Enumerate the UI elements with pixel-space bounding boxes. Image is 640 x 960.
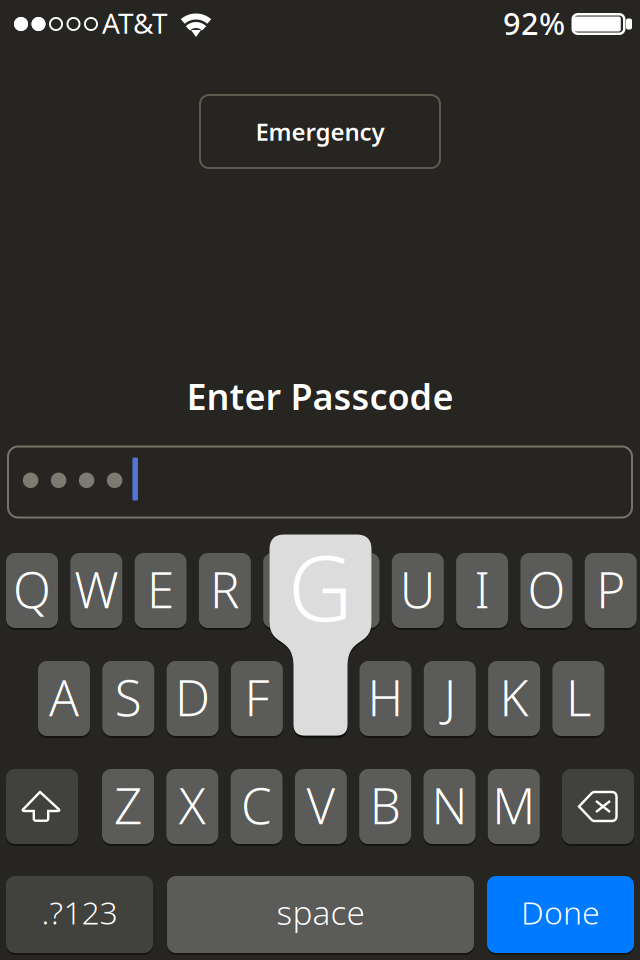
button[interactable]: .?123 <box>6 876 153 953</box>
staticText: space <box>276 890 364 934</box>
button[interactable]: V <box>295 769 347 844</box>
button[interactable]: Delete <box>562 769 634 844</box>
button[interactable]: I <box>456 553 508 628</box>
button[interactable]: M <box>488 769 540 844</box>
staticText: N <box>431 772 467 838</box>
staticText: I <box>475 556 490 622</box>
button[interactable]: S <box>102 661 154 736</box>
staticText: Enter Passcode <box>186 372 453 420</box>
staticText: B <box>370 772 401 838</box>
staticText: J <box>444 664 456 730</box>
button[interactable]: R <box>199 553 251 628</box>
button[interactable]: H <box>359 661 411 736</box>
staticText: A <box>49 664 79 730</box>
button[interactable]: N <box>423 769 475 844</box>
staticText: D <box>175 664 210 730</box>
button[interactable]: Q <box>6 553 58 628</box>
button[interactable]: C <box>231 769 283 844</box>
button[interactable]: K <box>488 661 540 736</box>
staticText: R <box>210 556 240 622</box>
button[interactable]: A <box>38 661 90 736</box>
staticText: O <box>527 556 565 622</box>
staticText: .?123 <box>41 891 117 933</box>
staticText: L <box>566 664 591 730</box>
button[interactable]: Emergency <box>199 94 441 169</box>
staticText: P <box>596 556 625 622</box>
staticText: Q <box>13 556 51 622</box>
button[interactable]: Z <box>102 769 154 844</box>
button[interactable]: T <box>263 553 315 628</box>
button[interactable]: F <box>231 661 283 736</box>
staticText: C <box>241 772 272 838</box>
staticText: V <box>306 772 335 838</box>
button[interactable]: Y <box>327 553 379 628</box>
staticText: M <box>492 772 535 838</box>
button[interactable]: space <box>167 876 474 953</box>
staticText: G <box>288 527 353 646</box>
button[interactable]: X <box>166 769 218 844</box>
staticText: AT&T <box>102 4 168 42</box>
staticText: K <box>500 664 529 730</box>
button[interactable]: U <box>392 553 444 628</box>
button[interactable]: Done <box>487 876 634 953</box>
button[interactable]: G <box>295 661 347 736</box>
staticText: F <box>244 664 269 730</box>
staticText: T <box>276 556 302 622</box>
staticText: 92% <box>503 3 565 43</box>
staticText: X <box>179 772 206 838</box>
staticText: Done <box>521 891 600 933</box>
staticText: U <box>400 556 436 622</box>
button[interactable]: B <box>359 769 411 844</box>
button[interactable]: W <box>70 553 122 628</box>
button[interactable]: Shift <box>6 769 78 844</box>
staticText: S <box>115 664 142 730</box>
button[interactable]: O <box>520 553 572 628</box>
staticText: Emergency <box>255 116 384 147</box>
button[interactable]: E <box>135 553 187 628</box>
button[interactable]: J <box>424 661 476 736</box>
button[interactable]: P <box>585 553 637 628</box>
staticText: Z <box>114 772 142 838</box>
button[interactable]: D <box>167 661 219 736</box>
staticText: W <box>74 556 118 622</box>
staticText: H <box>367 664 403 730</box>
staticText: E <box>147 556 174 622</box>
button[interactable]: L <box>552 661 604 736</box>
staticText: Y <box>340 556 366 622</box>
